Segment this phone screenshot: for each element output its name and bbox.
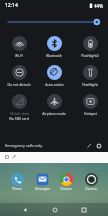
button[interactable]: Settings [94, 141, 103, 150]
button[interactable]: Mobile data [2, 93, 36, 122]
button[interactable]: Flashlight [73, 64, 107, 88]
button[interactable]: Brightness [8, 16, 100, 28]
button[interactable]: Home [49, 204, 60, 215]
staticText: Airplane mode [42, 111, 66, 116]
button[interactable]: Airplane mode [37, 93, 71, 117]
staticText: Flashlight [82, 82, 98, 87]
button[interactable]: Hotspot [73, 93, 107, 117]
button[interactable]: Bluetooth [37, 35, 71, 59]
button[interactable]: Back [19, 204, 30, 215]
staticText: Hotspot [84, 111, 97, 116]
button[interactable]: Flashlight2 [73, 35, 107, 59]
staticText: Do not disturb [7, 82, 31, 87]
staticText: Bluetooth [46, 53, 62, 58]
staticText: Phone [12, 187, 22, 191]
button[interactable]: Camera [80, 173, 102, 191]
button[interactable]: Chrome [55, 173, 77, 191]
button[interactable]: Wi‑Fi [2, 35, 36, 59]
button[interactable]: Phone [6, 173, 28, 191]
button[interactable]: Edit tiles [85, 141, 94, 150]
staticText: Emergency calls only [5, 143, 43, 148]
staticText: 44% [94, 3, 103, 9]
staticText: Camera [85, 187, 97, 191]
staticText: Wi‑Fi [15, 53, 23, 58]
button[interactable]: Do not disturb [2, 64, 36, 88]
staticText: 12:14 [5, 2, 18, 9]
staticText: Mobile data [10, 111, 29, 116]
staticText: Auto‑rotate [45, 82, 64, 87]
staticText: No SIM card [9, 116, 29, 121]
staticText: Messages [35, 187, 50, 191]
button[interactable]: Recents [78, 204, 89, 215]
staticText: Flashlight2 [81, 53, 99, 58]
button[interactable]: Messages [31, 173, 53, 191]
staticText: Chrome [60, 187, 72, 191]
button[interactable]: Auto‑rotate [37, 64, 71, 88]
